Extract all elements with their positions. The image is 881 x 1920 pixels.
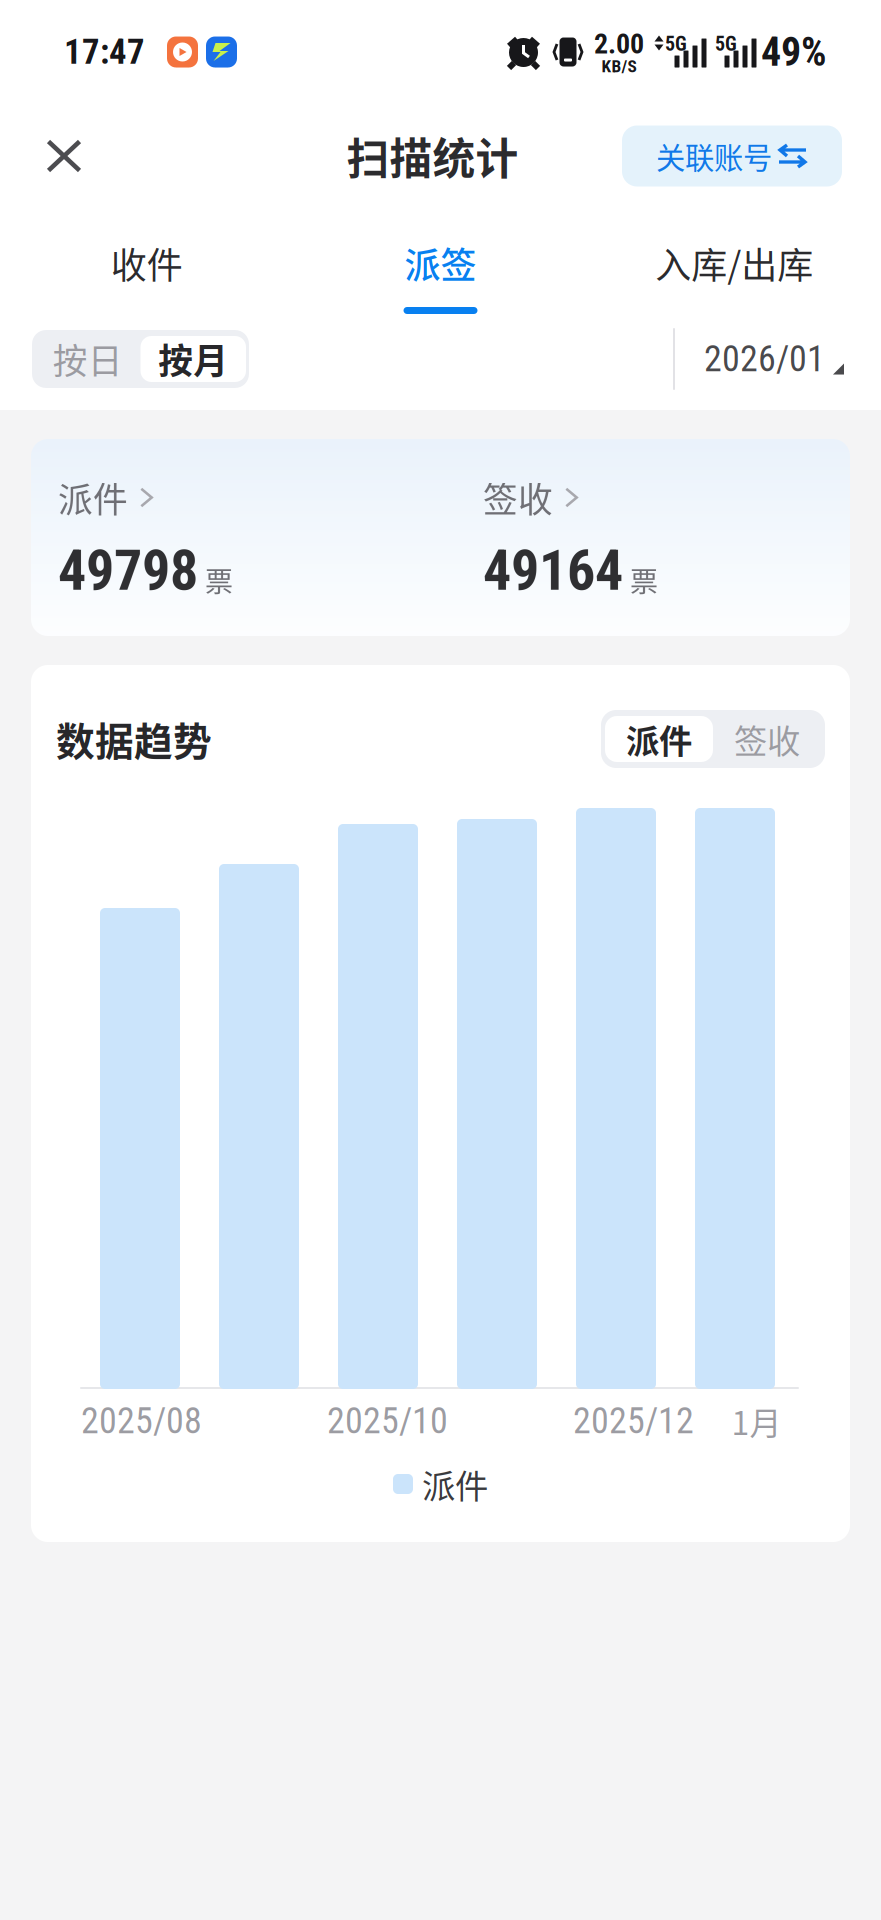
staticText: 2.00 (594, 27, 644, 60)
button[interactable]: 派件 (605, 716, 713, 762)
staticText: 收件 (111, 237, 183, 289)
button[interactable]: 按月 (140, 336, 246, 382)
staticText: 签收 (734, 715, 800, 763)
staticText: 2025/08 (81, 1400, 202, 1442)
staticText: 派件 (58, 472, 128, 523)
staticText: 2026/01 (704, 338, 825, 380)
staticText: 17:47 (64, 32, 145, 72)
staticText: 49164 (483, 538, 623, 603)
staticText: 1月 (731, 1398, 781, 1444)
staticText: 派件 (422, 1460, 488, 1508)
button[interactable]: 关闭 (31, 123, 97, 189)
staticText: 按日 (53, 334, 123, 384)
staticText: 派件 (626, 715, 692, 763)
button[interactable]: 收件 (0, 208, 294, 320)
staticText: 派签 (404, 237, 476, 289)
staticText: 扫描统计 (346, 125, 518, 187)
button[interactable]: 按日 (35, 336, 140, 382)
button[interactable]: 派件 (58, 480, 233, 593)
button[interactable]: 派签 (294, 208, 587, 320)
staticText: 49% (761, 29, 827, 75)
staticText: 票 (205, 560, 233, 600)
staticText: 票 (630, 560, 658, 600)
staticText: 按月 (158, 334, 228, 384)
button[interactable]: 关联账号 (622, 125, 842, 186)
staticText: 2025/10 (327, 1400, 448, 1442)
button[interactable]: 签收 (713, 716, 821, 762)
staticText: KB/S (601, 56, 636, 77)
staticText: 数据趋势 (56, 711, 212, 767)
button[interactable]: 入库/出库 (587, 208, 881, 320)
staticText: 5G (715, 32, 737, 56)
staticText: 2025/12 (573, 1400, 694, 1442)
staticText: 关联账号 (656, 135, 772, 177)
staticText: 入库/出库 (655, 237, 813, 289)
staticText: 签收 (483, 472, 553, 523)
staticText: 49798 (58, 538, 198, 603)
button[interactable]: 2026/01 (704, 328, 844, 390)
staticText: 5G (665, 32, 687, 56)
button[interactable]: 签收 (483, 480, 658, 593)
